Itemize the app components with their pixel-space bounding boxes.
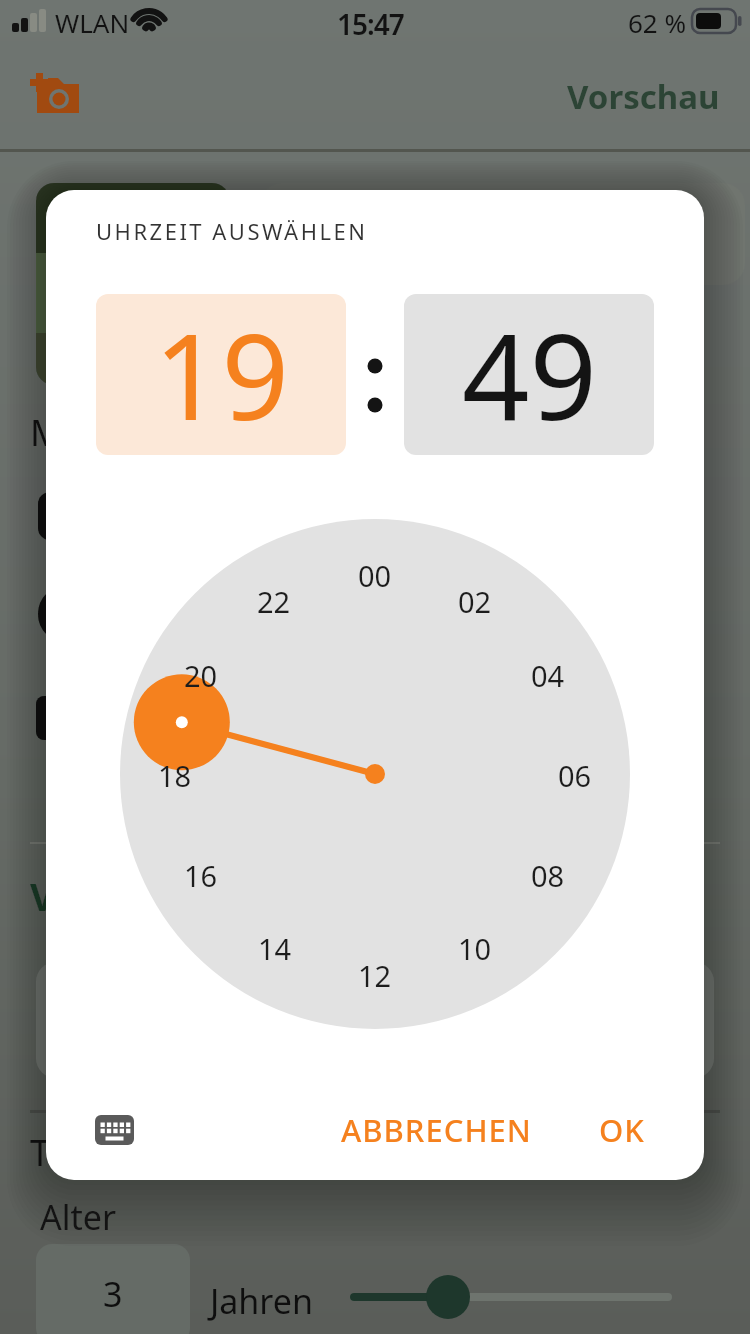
staticText: Meine bbox=[30, 408, 135, 457]
staticText: 20 bbox=[184, 656, 218, 692]
button[interactable]: 19 bbox=[96, 294, 346, 455]
staticText: 19 bbox=[154, 294, 289, 455]
button[interactable]: 49 bbox=[404, 294, 654, 455]
staticText: 22 bbox=[257, 582, 291, 618]
staticText: 02 bbox=[458, 582, 492, 618]
staticText: 04 bbox=[531, 656, 565, 692]
staticText: 16 bbox=[184, 856, 218, 892]
staticText: 18 bbox=[158, 756, 192, 792]
staticText: 3 bbox=[103, 1271, 123, 1317]
staticText: 08 bbox=[531, 856, 565, 892]
staticText: 14 bbox=[258, 929, 292, 965]
staticText: 12 bbox=[358, 956, 392, 992]
staticText: Titel bbox=[30, 1128, 102, 1177]
button[interactable] bbox=[80, 1100, 150, 1160]
button[interactable]: ABBRECHEN bbox=[306, 1108, 566, 1152]
staticText: UHRZEIT AUSWÄHLEN bbox=[96, 216, 368, 246]
staticText: Verhalten bbox=[30, 870, 217, 922]
staticText: Alter bbox=[40, 1194, 116, 1240]
button[interactable] bbox=[36, 183, 230, 385]
staticText: ABBRECHEN bbox=[341, 1109, 532, 1151]
staticText: 10 bbox=[458, 929, 492, 965]
staticText: 06 bbox=[558, 756, 592, 792]
staticText: WLAN bbox=[55, 5, 130, 40]
button[interactable]: OK bbox=[576, 1108, 668, 1152]
button[interactable]: Vorschau bbox=[567, 74, 720, 119]
staticText: Jahren bbox=[210, 1278, 313, 1324]
staticText: OK bbox=[599, 1109, 645, 1151]
button[interactable]: 3 bbox=[36, 1244, 190, 1334]
staticText: 62 % bbox=[628, 5, 687, 40]
staticText: 49 bbox=[462, 294, 597, 455]
staticText: 15:47 bbox=[337, 5, 404, 43]
staticText: 00 bbox=[358, 556, 392, 592]
